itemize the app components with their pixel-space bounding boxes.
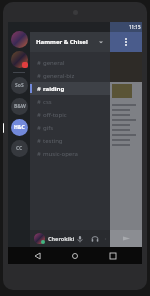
staticText: #	[37, 111, 41, 119]
staticText: Cherokiki	[48, 235, 75, 242]
staticText: general	[43, 59, 65, 67]
button[interactable]: CC	[11, 140, 28, 157]
button[interactable]: #	[30, 69, 110, 82]
staticText: 11:15	[129, 24, 141, 30]
button[interactable]: #	[30, 147, 110, 160]
staticText: css	[43, 98, 52, 106]
staticText: #	[37, 85, 41, 93]
button[interactable]: Mute microphone	[75, 234, 85, 244]
staticText: #	[37, 150, 41, 158]
staticText: #	[37, 72, 41, 80]
staticText: B&W	[14, 103, 26, 110]
staticText: testing	[43, 137, 63, 145]
staticText: #	[37, 124, 41, 132]
button[interactable]: Home	[67, 248, 83, 264]
button[interactable]: #	[30, 56, 110, 69]
button[interactable]: #	[30, 108, 110, 121]
button[interactable]: #	[30, 121, 110, 134]
staticText: #	[37, 98, 41, 106]
button[interactable]: #	[30, 134, 110, 147]
button[interactable]: SoS	[11, 77, 28, 94]
staticText: gifs	[43, 124, 54, 132]
staticText: music-opera	[43, 150, 78, 158]
button[interactable]: #	[30, 82, 110, 95]
button[interactable]: Deafen	[90, 234, 100, 244]
button[interactable]: Recent apps	[105, 248, 121, 264]
button[interactable]: H&C	[11, 119, 28, 136]
button[interactable]: Server	[11, 51, 28, 68]
staticText: raiding	[43, 85, 65, 93]
staticText: #	[37, 137, 41, 145]
staticText: general-biz	[43, 72, 75, 80]
button[interactable]: B&W	[11, 98, 28, 115]
button[interactable]: Your profile	[34, 233, 45, 244]
staticText: CC	[16, 145, 23, 152]
staticText: #	[37, 59, 41, 67]
staticText: off-topic	[43, 111, 67, 119]
staticText: H&C	[14, 124, 25, 131]
button[interactable]: User settings	[105, 234, 106, 244]
staticText: SoS	[15, 82, 24, 89]
button[interactable]: Hammer & Chisel	[30, 32, 110, 52]
button[interactable]: #	[30, 95, 110, 108]
button[interactable]: Server	[11, 31, 28, 48]
button[interactable]: Back	[30, 248, 46, 264]
staticText: Hammer & Chisel	[36, 38, 88, 46]
